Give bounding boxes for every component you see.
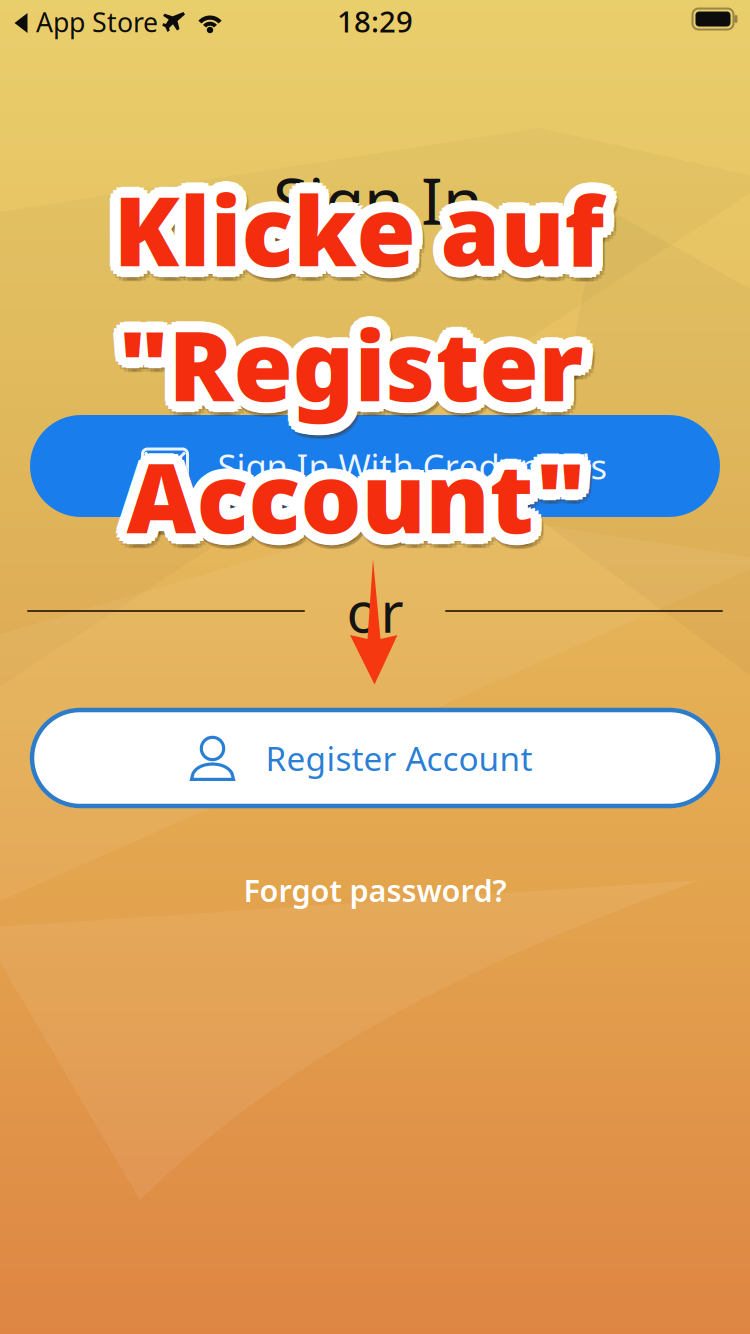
staticText: "Register: [121, 306, 586, 433]
staticText: Klicke auf: [123, 161, 614, 289]
staticText: Account": [115, 432, 574, 560]
staticText: Klicke auf: [116, 160, 607, 287]
staticText: Klicke auf: [105, 165, 596, 292]
staticText: Sign In: [273, 157, 483, 242]
staticText: Klicke auf: [119, 163, 610, 290]
staticText: Account": [128, 447, 587, 575]
staticText: Sign In With Credentials: [217, 443, 607, 489]
staticText: "Register: [113, 298, 578, 425]
staticText: Klicke auf: [109, 175, 600, 303]
staticText: Account": [129, 438, 588, 565]
staticText: Account": [120, 432, 579, 560]
staticText: Klicke auf: [106, 173, 597, 300]
staticText: "Register: [123, 296, 588, 423]
staticText: Account": [121, 430, 580, 557]
staticText: Account": [136, 428, 595, 556]
staticText: Account": [121, 444, 580, 571]
staticText: Account": [137, 432, 596, 560]
staticText: Account": [121, 435, 580, 562]
button[interactable]: Register Account: [30, 708, 720, 808]
staticText: Klicke auf: [109, 155, 600, 283]
staticText: Klicke auf: [119, 165, 610, 293]
staticText: Klicke auf: [108, 163, 599, 290]
staticText: Klicke auf: [118, 175, 609, 303]
staticText: Forgot password?: [243, 870, 506, 910]
staticText: Account": [137, 436, 596, 564]
staticText: Klicke auf: [119, 168, 610, 295]
staticText: Klicke auf: [111, 159, 602, 287]
staticText: Klicke auf: [123, 177, 614, 304]
staticText: Account": [129, 427, 588, 554]
staticText: "Register: [116, 294, 581, 422]
staticText: Klicke auf: [103, 161, 594, 288]
staticText: Account": [116, 428, 575, 555]
staticText: Klicke auf: [113, 159, 604, 287]
staticText: App Store: [36, 4, 158, 40]
staticText: Account": [134, 424, 593, 552]
staticText: "Register: [131, 304, 596, 432]
staticText: "Register: [116, 295, 581, 422]
staticText: "Register: [120, 315, 585, 443]
staticText: "Register: [118, 311, 583, 439]
staticText: Account": [137, 428, 596, 555]
staticText: Klicke auf: [102, 165, 593, 293]
staticText: Account": [126, 426, 585, 554]
staticText: Klicke auf: [121, 157, 612, 285]
staticText: "Register: [129, 300, 594, 428]
staticText: "Register: [126, 292, 591, 420]
staticText: Klicke auf: [113, 154, 604, 282]
staticText: "Register: [114, 304, 579, 432]
staticText: "Register: [123, 304, 588, 432]
staticText: "Register: [108, 296, 573, 423]
staticText: Klicke auf: [109, 161, 600, 288]
staticText: Account": [119, 440, 578, 567]
staticText: "Register: [113, 303, 578, 430]
staticText: Account": [139, 432, 598, 559]
staticText: Klicke auf: [116, 171, 607, 298]
staticText: "Register: [108, 304, 573, 432]
staticText: "Register: [125, 294, 590, 422]
staticText: Klicke auf: [126, 173, 617, 301]
staticText: "Register: [124, 298, 589, 425]
staticText: Account": [122, 436, 581, 564]
staticText: Account": [133, 426, 592, 554]
staticText: "Register: [131, 308, 596, 436]
staticText: Klicke auf: [108, 161, 599, 289]
staticText: Klicke auf: [115, 180, 606, 308]
staticText: Account": [131, 428, 590, 555]
staticText: Klicke auf: [103, 169, 594, 297]
staticText: "Register: [125, 314, 590, 442]
staticText: Klicke auf: [118, 161, 609, 288]
staticText: Klicke auf: [113, 176, 604, 304]
staticText: Klicke auf: [126, 169, 617, 297]
staticText: "Register: [110, 308, 575, 436]
staticText: "Register: [129, 296, 594, 423]
staticText: "Register: [121, 295, 586, 422]
staticText: Account": [132, 435, 591, 562]
staticText: "Register: [113, 296, 578, 424]
staticText: "Register: [109, 304, 574, 432]
staticText: "Register: [107, 300, 572, 428]
staticText: Account": [132, 430, 591, 557]
staticText: Account": [118, 432, 577, 559]
staticText: "Register: [118, 289, 583, 417]
staticText: Account": [118, 440, 577, 568]
staticText: Account": [126, 438, 585, 566]
staticText: "Register: [123, 290, 588, 418]
staticText: Account": [117, 436, 576, 564]
staticText: Account": [122, 428, 581, 555]
staticText: Account": [119, 424, 578, 552]
staticText: Account": [124, 426, 583, 554]
staticText: Account": [133, 432, 592, 560]
button[interactable]: Forgot password?: [175, 862, 575, 918]
staticText: "Register: [114, 296, 579, 423]
staticText: Klicke auf: [113, 165, 604, 293]
staticText: Account": [126, 443, 585, 571]
staticText: Klicke auf: [121, 173, 612, 300]
staticText: Account": [134, 440, 593, 567]
staticText: "Register: [129, 304, 594, 432]
staticText: Klicke auf: [111, 171, 602, 298]
staticText: "Register: [114, 290, 579, 418]
staticText: "Register: [112, 300, 577, 428]
button[interactable]: Sign In With Credentials: [30, 415, 720, 517]
